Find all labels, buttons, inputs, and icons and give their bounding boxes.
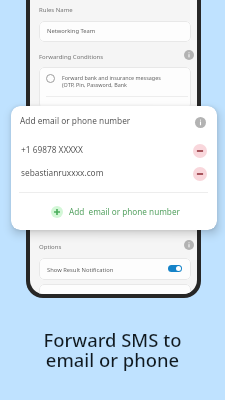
- staticText: Add email or phone number: [20, 115, 131, 126]
- staticText: Add email or phone number: [69, 206, 180, 217]
- button[interactable]: Info: [195, 117, 206, 128]
- staticText: (OTP, Pin, Password, Bank: [62, 81, 127, 88]
- button[interactable]: Remove: [193, 167, 207, 181]
- staticText: +1 69878 XXXXX: [21, 144, 83, 155]
- button[interactable]: Info: [184, 240, 194, 250]
- staticText: Options: [39, 243, 62, 251]
- staticText: sebastianruxxxx.com: [21, 167, 104, 178]
- staticText: Forward bank and insurance messages: [62, 74, 161, 81]
- button[interactable]: [39, 284, 191, 294]
- button[interactable]: Info: [184, 50, 194, 60]
- staticText: Networking Team: [47, 27, 96, 35]
- staticText: Forward SMS to email or phone: [0, 327, 225, 372]
- staticText: Show Result Notification: [47, 266, 114, 274]
- button[interactable]: Remove: [193, 144, 207, 158]
- staticText: Forwarding Conditions: [39, 53, 104, 61]
- button[interactable]: Show Result Notification toggle: [168, 265, 182, 272]
- button[interactable]: [39, 258, 191, 280]
- button[interactable]: [39, 21, 191, 42]
- button[interactable]: Add email or phone number: [51, 205, 180, 218]
- staticText: Rules Name: [39, 6, 73, 14]
- button[interactable]: [39, 67, 191, 109]
- button[interactable]: Forward bank and insurance messages: [46, 74, 55, 83]
